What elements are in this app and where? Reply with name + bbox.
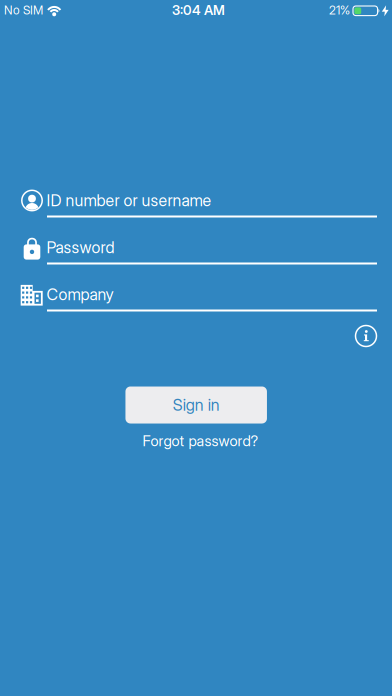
staticText: Company xyxy=(46,285,113,304)
button[interactable]: Forgot password? xyxy=(142,432,258,450)
button[interactable]: Password xyxy=(20,230,377,265)
button[interactable]: Info xyxy=(351,321,381,351)
button[interactable]: Sign in xyxy=(125,386,267,423)
staticText: No SIM xyxy=(4,3,43,17)
button[interactable]: ID number or username xyxy=(20,183,377,218)
staticText: 21% xyxy=(329,3,350,17)
button[interactable]: Company xyxy=(20,277,377,312)
staticText: ID number or username xyxy=(46,191,211,210)
staticText: Password xyxy=(46,238,114,257)
staticText: Sign in xyxy=(173,396,220,414)
staticText: 3:04 AM xyxy=(172,2,225,18)
staticText: Forgot password? xyxy=(142,432,258,450)
